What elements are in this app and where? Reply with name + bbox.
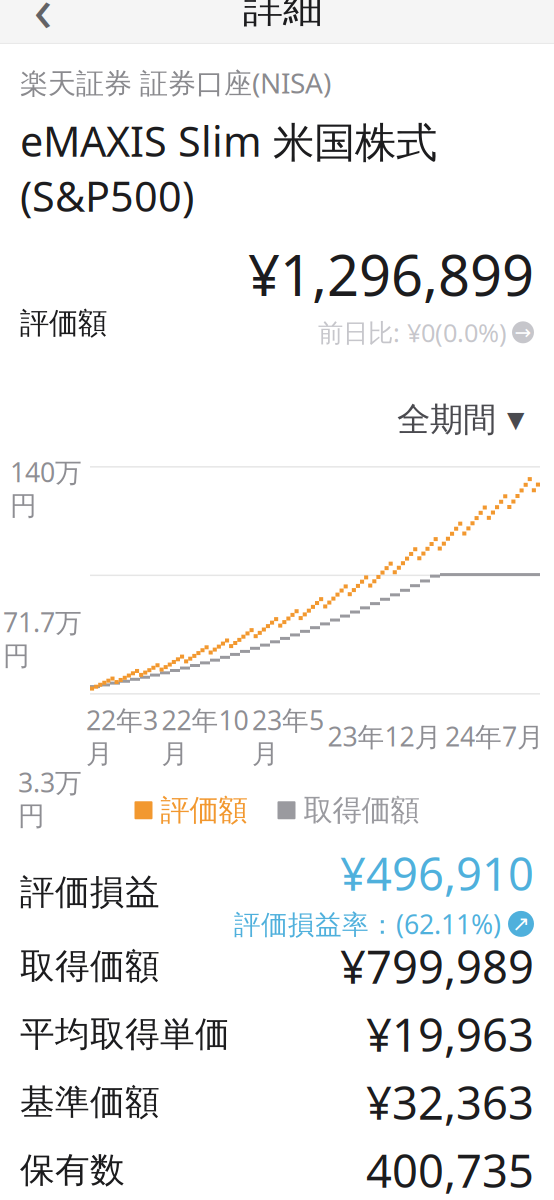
staticText: 取得価額 bbox=[303, 792, 419, 828]
staticText: 24年7月 bbox=[445, 718, 544, 754]
staticText: 23年5月 bbox=[252, 702, 324, 770]
staticText: 評価額 bbox=[160, 792, 247, 828]
staticText: 評価額 bbox=[20, 305, 107, 341]
staticText: 平均取得単価 bbox=[20, 1013, 230, 1056]
staticText: 71.7万円 bbox=[3, 604, 82, 672]
button[interactable]: 評価額 bbox=[20, 223, 534, 349]
staticText: ↗ bbox=[512, 912, 530, 936]
staticText: ¥799,989 bbox=[340, 936, 534, 996]
staticText: 楽天証券 証券口座(NISA) bbox=[20, 64, 331, 101]
staticText: 22年3月 bbox=[86, 702, 158, 770]
staticText: 前日比: ¥0(0.0%) bbox=[318, 315, 507, 349]
staticText: 評価損益 bbox=[20, 871, 160, 914]
staticText: ▼ bbox=[507, 407, 524, 432]
staticText: 保有数 bbox=[20, 1149, 125, 1192]
staticText: 23年12月 bbox=[327, 718, 441, 754]
staticText: ¥19,963 bbox=[366, 1004, 534, 1064]
staticText: 400,735 bbox=[366, 1140, 534, 1200]
button[interactable]: 全期間 bbox=[391, 393, 530, 446]
staticText: 22年10月 bbox=[161, 702, 248, 770]
staticText: 取得価額 bbox=[20, 945, 160, 988]
staticText: → bbox=[514, 321, 531, 344]
button[interactable]: 戻る bbox=[12, 0, 74, 44]
staticText: 3.3万円 bbox=[18, 764, 82, 833]
staticText: 基準価額 bbox=[20, 1081, 160, 1124]
staticText: ¥32,363 bbox=[366, 1072, 534, 1132]
staticText: ‹ bbox=[33, 0, 52, 49]
staticText: ¥496,910 bbox=[340, 843, 534, 903]
staticText: 140万円 bbox=[10, 454, 82, 522]
staticText: 評価損益率：(62.11%) bbox=[234, 906, 501, 942]
staticText: ¥1,296,899 bbox=[248, 237, 534, 311]
button[interactable]: 評価損益 bbox=[0, 852, 554, 932]
staticText: 全期間 bbox=[397, 399, 496, 440]
staticText: 詳細 bbox=[243, 0, 323, 32]
staticText: eMAXIS Slim 米国株式(S&P500) bbox=[20, 113, 437, 223]
